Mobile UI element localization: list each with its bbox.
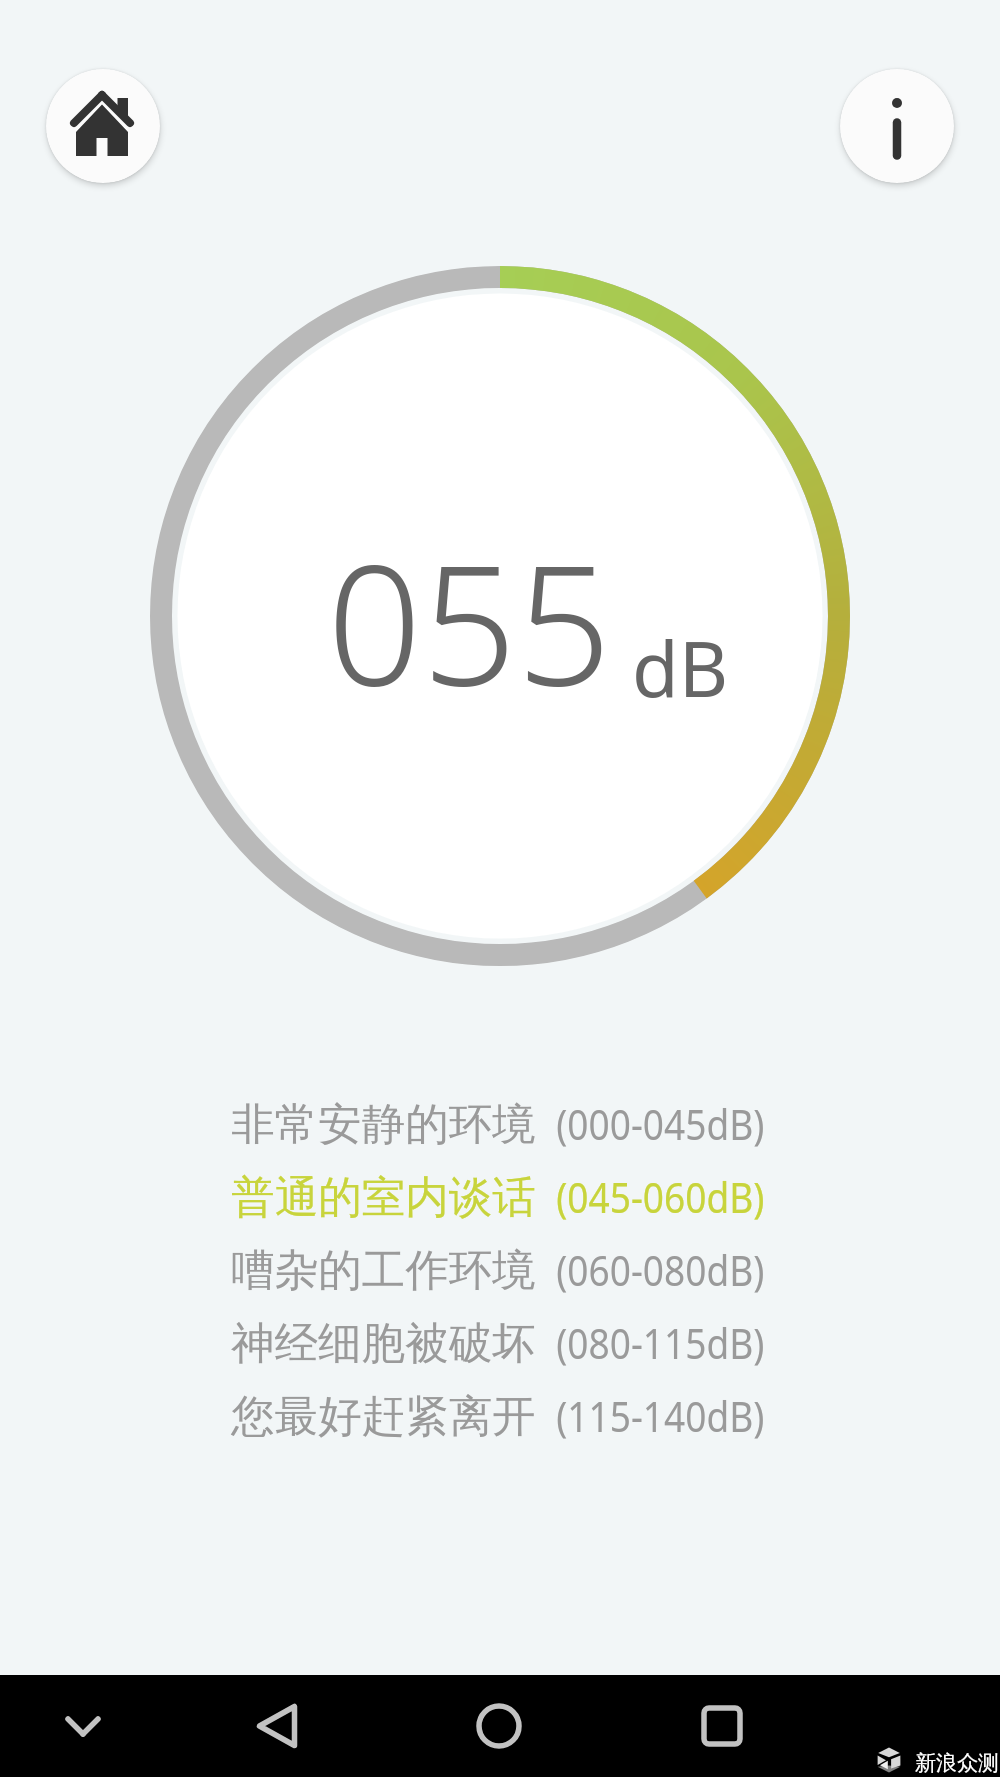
staticText: 普通的室内谈话 xyxy=(231,1170,536,1225)
button[interactable]: 嘈杂的工作环境 xyxy=(0,1234,1000,1307)
staticText: (080-115dB) xyxy=(556,1314,765,1371)
staticText: 神经细胞被破坏 xyxy=(231,1316,536,1371)
staticText: 055 xyxy=(327,508,612,734)
button[interactable]: Back xyxy=(237,1686,317,1766)
staticText: (115-140dB) xyxy=(556,1387,765,1444)
staticText: (060-080dB) xyxy=(556,1241,765,1298)
staticText: (045-060dB) xyxy=(556,1168,765,1225)
staticText: 您最好赶紧离开 xyxy=(231,1389,536,1444)
button[interactable]: 您最好赶紧离开 xyxy=(0,1380,1000,1453)
button[interactable]: 非常安静的环境 xyxy=(0,1088,1000,1161)
staticText: 非常安静的环境 xyxy=(231,1097,536,1152)
button[interactable]: Hide keyboard xyxy=(43,1686,123,1766)
button[interactable]: 神经细胞被破坏 xyxy=(0,1307,1000,1380)
staticText: dB xyxy=(632,616,729,720)
button[interactable]: Home xyxy=(459,1686,539,1766)
button[interactable]: Recent apps xyxy=(682,1686,762,1766)
staticText: 嘈杂的工作环境 xyxy=(231,1243,536,1298)
button[interactable]: 普通的室内谈话 xyxy=(0,1161,1000,1234)
staticText: (000-045dB) xyxy=(556,1095,765,1152)
staticText: 新浪众测 xyxy=(915,1750,999,1776)
button[interactable]: Home xyxy=(46,69,160,183)
button[interactable]: Information xyxy=(840,69,954,183)
